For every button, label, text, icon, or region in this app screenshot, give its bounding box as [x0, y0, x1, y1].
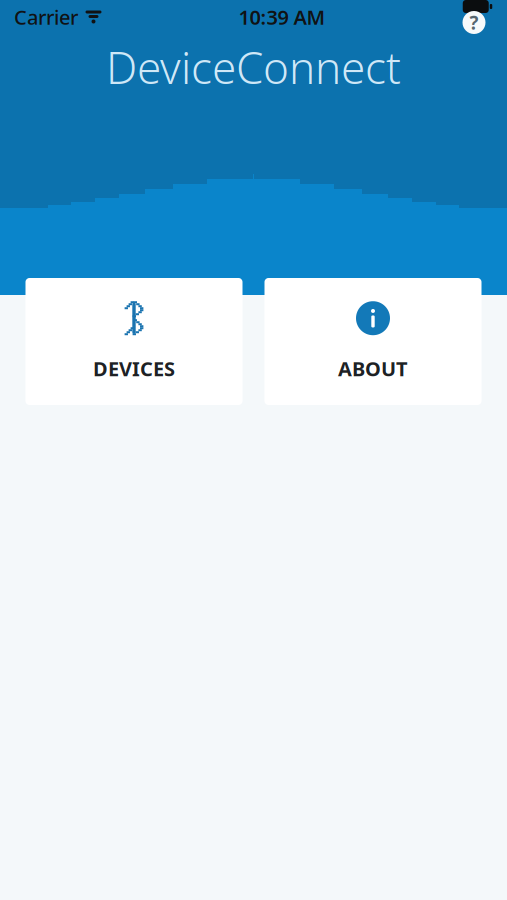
staticText: 10:39 AM: [238, 4, 325, 30]
staticText: ABOUT: [338, 355, 408, 382]
staticText: DEVICES: [93, 355, 175, 382]
staticText: DeviceConnect: [106, 38, 401, 96]
button[interactable]: About: [264, 278, 481, 405]
staticText: Carrier: [14, 4, 78, 30]
staticText: ?: [469, 10, 478, 35]
button[interactable]: Devices: [25, 278, 242, 405]
